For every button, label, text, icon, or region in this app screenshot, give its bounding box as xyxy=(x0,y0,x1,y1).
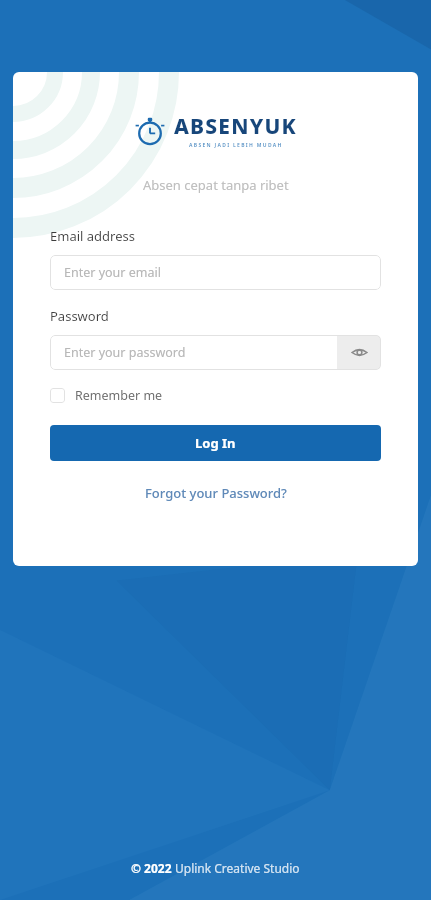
staticText: Log In xyxy=(195,434,236,452)
button[interactable]: Forgot your Password? xyxy=(145,484,287,502)
staticText: ABSENYUK xyxy=(174,112,297,141)
button[interactable]: Remember me xyxy=(50,387,381,404)
staticText: Uplink Creative Studio xyxy=(175,860,300,876)
button[interactable]: Log In xyxy=(50,425,381,461)
staticText: Absen cepat tanpa ribet xyxy=(143,176,289,194)
button[interactable]: Enter your password xyxy=(50,335,381,370)
staticText: Remember me xyxy=(75,387,163,404)
staticText: Enter your email xyxy=(64,264,161,281)
staticText: Enter your password xyxy=(64,344,186,361)
staticText: ABSEN JADI LEBIH MUDAH xyxy=(189,142,283,149)
button[interactable]: Enter your email xyxy=(50,255,381,290)
staticText: Email address xyxy=(50,227,135,245)
staticText: Password xyxy=(50,307,109,325)
staticText: © 2022 xyxy=(131,860,175,876)
staticText: Forgot your Password? xyxy=(145,484,287,502)
button[interactable]: Show password xyxy=(337,335,381,370)
